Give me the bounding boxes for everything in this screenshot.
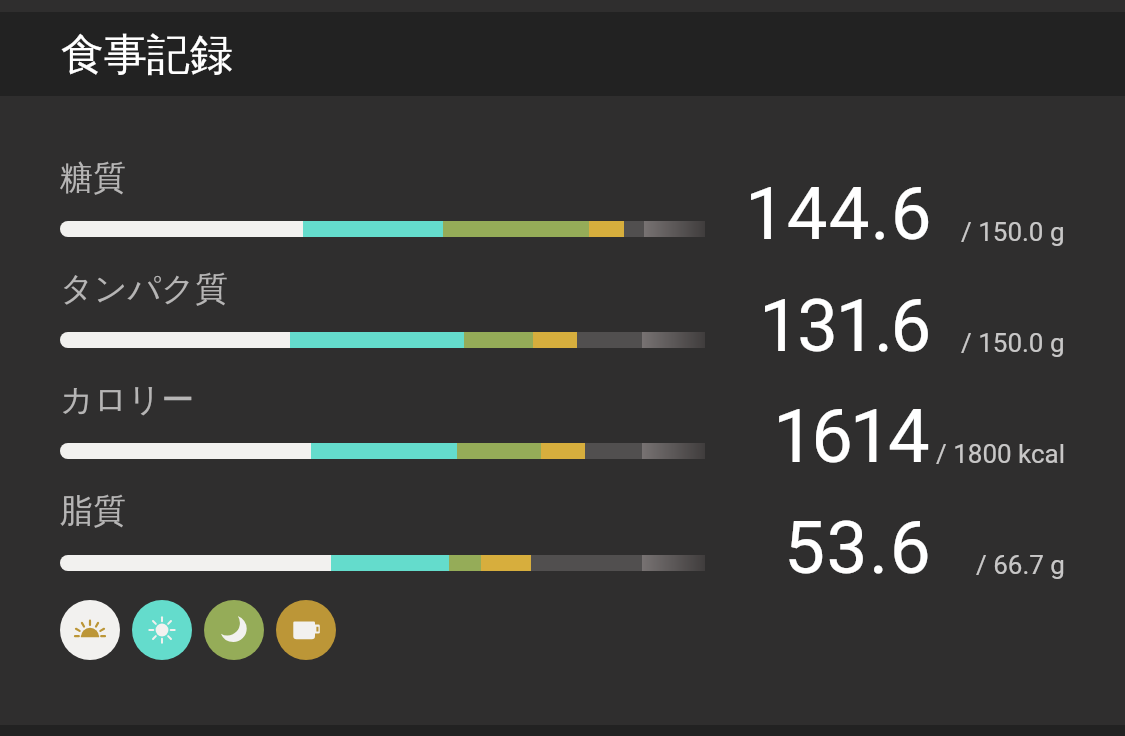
button[interactable]: Dinner bbox=[204, 600, 264, 660]
staticText: 53.6 bbox=[784, 505, 933, 591]
staticText: / 150.0 g bbox=[961, 328, 1065, 358]
staticText: / 66.7 g bbox=[976, 550, 1065, 580]
staticText: 144.6 bbox=[745, 172, 933, 257]
staticText: / 1800 kcal bbox=[936, 439, 1066, 469]
button[interactable]: Lunch bbox=[132, 600, 192, 660]
button[interactable]: Snack bbox=[276, 600, 336, 660]
staticText: 脂質 bbox=[60, 490, 126, 532]
staticText: / 150.0 g bbox=[961, 217, 1065, 247]
staticText: 131.6 bbox=[759, 284, 929, 369]
button[interactable]: Breakfast bbox=[60, 600, 120, 660]
staticText: 食事記録 bbox=[61, 28, 233, 82]
staticText: タンパク質 bbox=[60, 268, 229, 310]
staticText: 1614 bbox=[773, 393, 927, 480]
staticText: カロリー bbox=[60, 379, 195, 421]
staticText: 糖質 bbox=[60, 157, 126, 199]
